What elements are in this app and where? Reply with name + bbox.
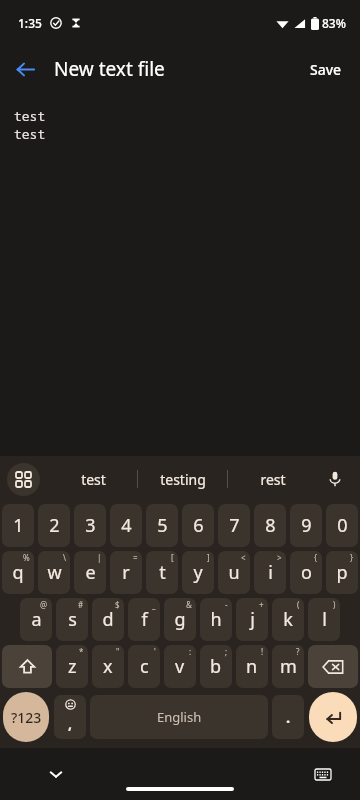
staticText: @ [40,599,48,610]
button[interactable]: c [128,645,160,688]
button[interactable]: d [92,598,124,641]
staticText: * [79,646,84,657]
staticText: x [103,654,113,679]
staticText: 9 [301,513,312,538]
staticText: d [102,607,114,632]
button[interactable]: testing [138,456,228,502]
staticText: > [277,552,282,563]
button[interactable]: e [74,551,106,594]
staticText: & [186,599,192,610]
button[interactable]: t [146,551,178,594]
staticText: q [12,560,24,585]
staticText: test [14,107,46,125]
staticText: \ [63,552,66,563]
staticText: ( [297,599,300,610]
button[interactable]: 4 [110,504,142,547]
button[interactable]: 6 [182,504,214,547]
staticText: y [193,560,203,585]
staticText: ; [225,646,228,657]
button[interactable]: a [20,598,52,641]
button[interactable]: Shift [2,645,52,688]
staticText: = [133,552,138,563]
staticText: h [210,607,222,632]
staticText: } [350,552,354,563]
button[interactable]: o [290,551,322,594]
button[interactable]: ?123 [3,692,49,742]
staticText: $ [115,599,120,610]
staticText: g [174,607,186,632]
staticText: ? [296,646,300,657]
button[interactable]: u [218,551,250,594]
button[interactable]: k [272,598,304,641]
staticText: e [85,560,96,585]
button[interactable]: h [200,598,232,641]
button[interactable]: 2 [38,504,70,547]
staticText: u [228,560,240,585]
staticText: ?123 [11,708,42,727]
button[interactable]: 5 [146,504,178,547]
button[interactable]: r [110,551,142,594]
button[interactable]: y [182,551,214,594]
button[interactable]: Back [7,51,43,87]
staticText: # [78,599,84,610]
button[interactable]: test [48,456,138,502]
button[interactable]: 0 [326,504,358,547]
button[interactable]: s [56,598,88,641]
button[interactable]: z [56,645,88,688]
staticText: z [68,654,77,679]
staticText: ) [333,599,336,610]
button[interactable]: m [272,645,304,688]
staticText: f [141,607,148,632]
button[interactable]: Emoji and comma [54,695,86,739]
button[interactable]: g [164,598,196,641]
staticText: 5 [157,513,168,538]
staticText: 7 [229,513,240,538]
staticText: < [241,552,246,563]
button[interactable]: 8 [254,504,286,547]
button[interactable]: x [92,645,124,688]
staticText: 1 [13,513,24,538]
button[interactable]: 7 [218,504,250,547]
button[interactable]: j [236,598,268,641]
staticText: . [286,707,291,727]
button[interactable]: Hide keyboard [40,758,72,790]
staticText: r [122,560,130,585]
button[interactable]: Backspace [308,645,358,688]
staticText: New text file [54,56,165,82]
button[interactable]: q [2,551,34,594]
button[interactable]: Save [300,53,352,86]
button[interactable]: f [128,598,160,641]
staticText: English [157,708,202,726]
staticText: n [246,654,258,679]
button[interactable]: . [272,695,304,739]
staticText: 8 [265,513,276,538]
button[interactable]: b [200,645,232,688]
button[interactable]: p [326,551,358,594]
staticText: a [31,607,42,632]
staticText: o [301,560,312,585]
button[interactable]: v [164,645,196,688]
staticText: p [336,560,348,585]
staticText: c [140,654,149,679]
button[interactable]: l [308,598,340,641]
button[interactable]: rest [228,456,318,502]
button[interactable]: w [38,551,70,594]
button[interactable]: 3 [74,504,106,547]
button[interactable]: Keyboard tools [7,463,40,496]
staticText: " [116,646,120,657]
button[interactable]: Switch keyboard [308,759,338,789]
button[interactable]: English [90,695,268,739]
button[interactable]: Enter [309,692,357,742]
staticText: : [189,646,192,657]
button[interactable]: i [254,551,286,594]
button[interactable]: n [236,645,268,688]
staticText: l [322,607,327,632]
staticText: _ [152,599,156,610]
button[interactable]: Voice input [319,463,351,495]
button[interactable]: 1 [2,504,34,547]
staticText: % [23,552,30,563]
staticText: rest [260,470,286,489]
staticText: Save [310,60,342,79]
button[interactable]: 9 [290,504,322,547]
staticText: ] [207,552,210,563]
